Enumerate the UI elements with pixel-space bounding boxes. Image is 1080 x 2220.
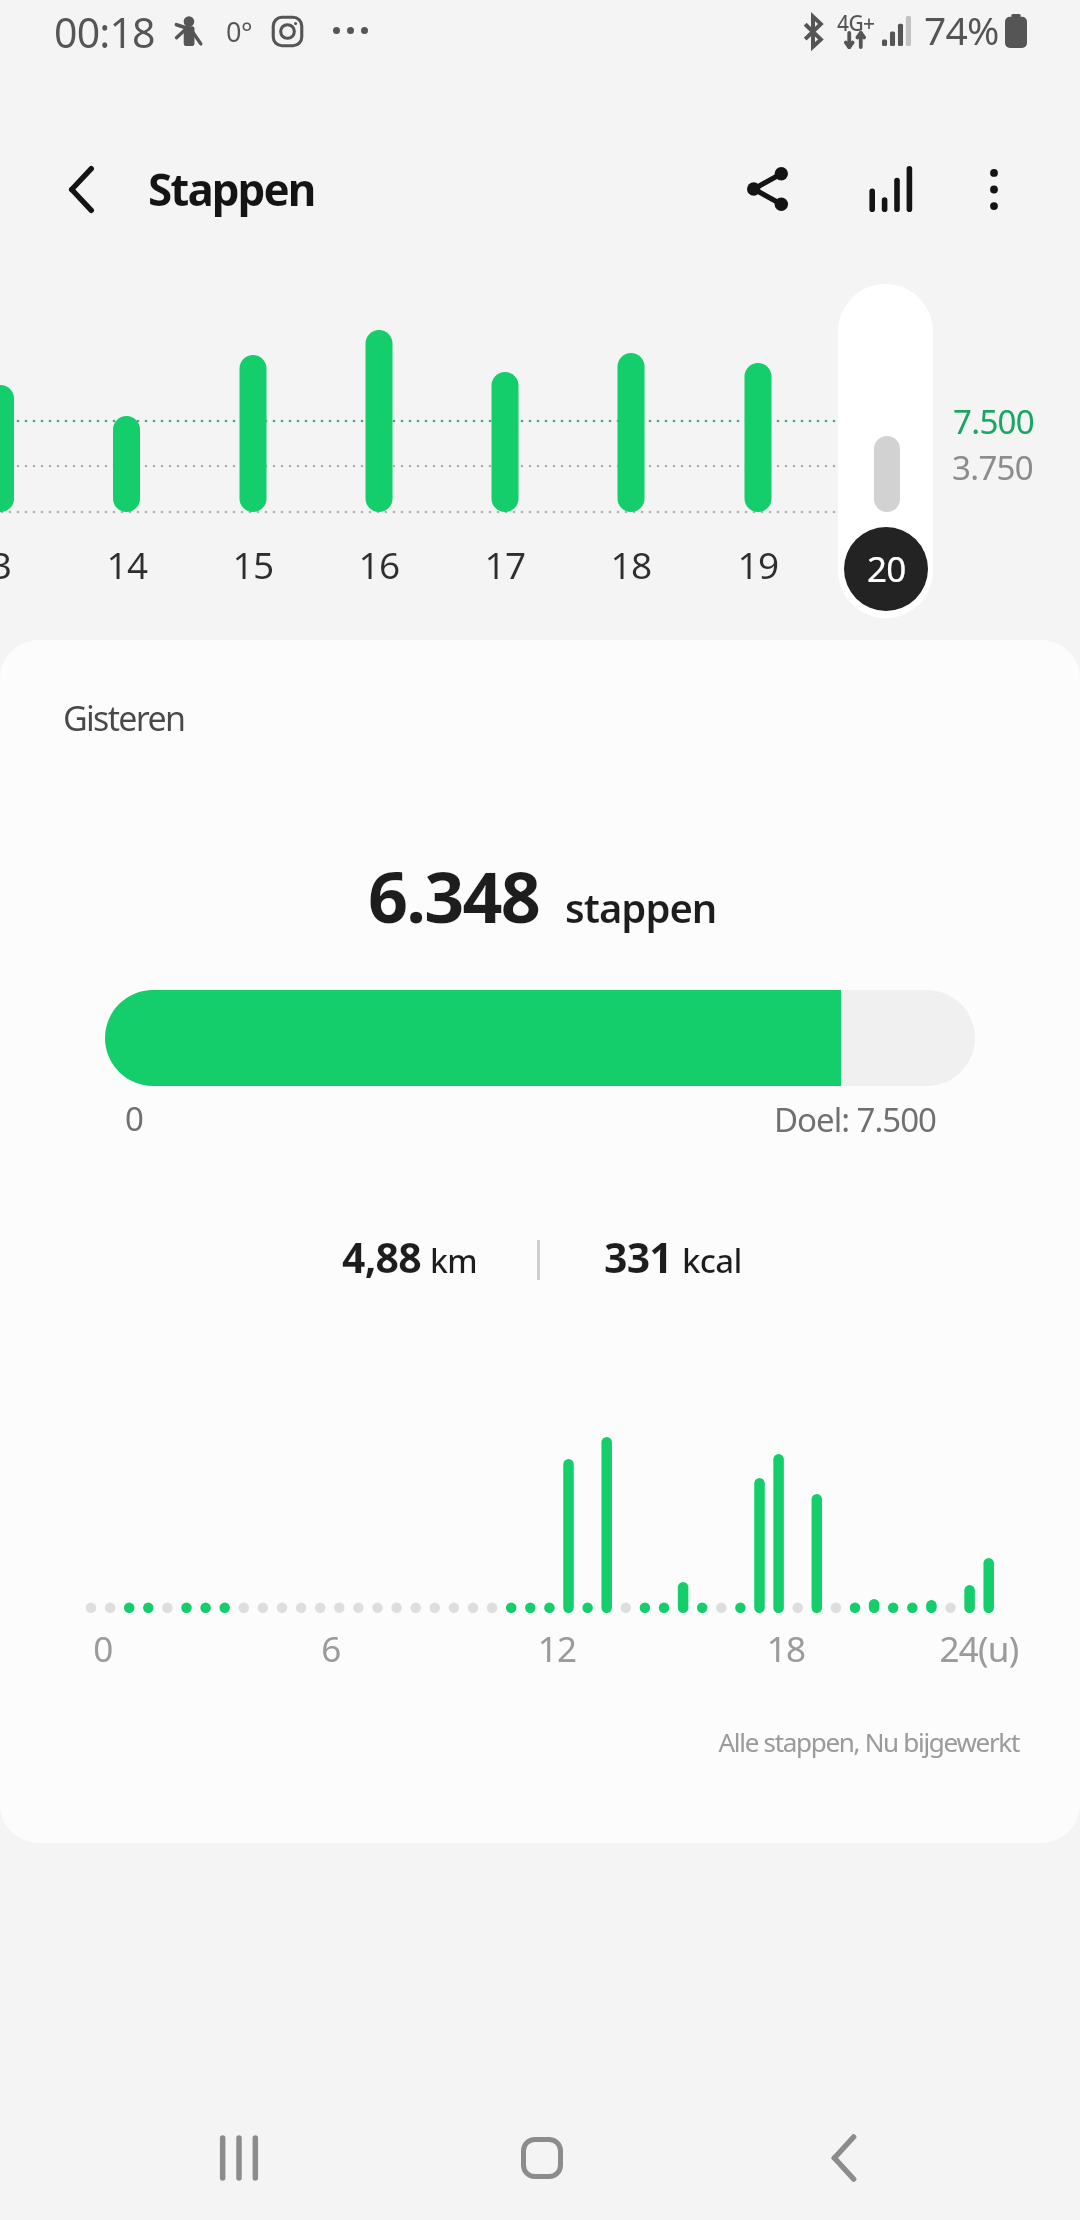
button[interactable] [105, 990, 975, 1086]
staticText: 0 [125, 1096, 144, 1141]
button[interactable]: Gisteren [0, 640, 1080, 1843]
staticText: 0° [226, 13, 252, 50]
staticText: 74% [924, 3, 999, 56]
button[interactable]: Trends [847, 147, 933, 233]
button[interactable]: 3 [0, 522, 51, 596]
staticText: 6.348 [368, 848, 540, 943]
staticText: 20 [867, 545, 906, 593]
button[interactable] [838, 284, 933, 618]
button[interactable]: 20 [844, 527, 928, 611]
staticText: km [430, 1239, 477, 1283]
staticText: 15 [203, 539, 303, 589]
staticText: 3 [0, 539, 51, 589]
button[interactable]: 19 [708, 522, 808, 596]
button[interactable]: 18 [581, 522, 681, 596]
button[interactable]: 15 [203, 522, 303, 596]
button[interactable]: Recent apps [179, 2098, 299, 2218]
staticText: 16 [329, 539, 429, 589]
staticText: 18 [716, 1625, 856, 1673]
staticText: 24(u) [909, 1625, 1049, 1673]
staticText: 6 [261, 1625, 401, 1673]
button[interactable]: 17 [455, 522, 555, 596]
staticText: Alle stappen, Nu bijgewerkt [0, 1724, 1019, 1759]
button[interactable]: Back [784, 2098, 904, 2218]
staticText: 7.500 [953, 399, 1035, 444]
staticText: 18 [581, 539, 681, 589]
staticText: Stappen [148, 159, 315, 219]
staticText: 00:18 [54, 4, 155, 60]
staticText: kcal [682, 1238, 742, 1283]
staticText: Doel: 7.500 [602, 1097, 936, 1142]
button[interactable]: More options [951, 146, 1037, 232]
staticText: stappen [565, 880, 717, 934]
staticText: 12 [487, 1625, 627, 1673]
button[interactable]: Home [482, 2098, 602, 2218]
staticText: 3.750 [952, 445, 1034, 490]
button[interactable]: Back [38, 146, 125, 233]
staticText: 19 [708, 539, 808, 589]
button[interactable]: 16 [329, 522, 429, 596]
staticText: Gisteren [63, 695, 185, 741]
staticText: 0 [33, 1625, 173, 1673]
staticText: 14 [77, 539, 177, 589]
staticText: 331 [604, 1229, 672, 1285]
button[interactable]: 14 [77, 522, 177, 596]
staticText: 4,88 [342, 1229, 421, 1285]
staticText: 17 [455, 539, 555, 589]
button[interactable]: Share [724, 146, 810, 232]
staticText: 4G+ [837, 9, 875, 38]
